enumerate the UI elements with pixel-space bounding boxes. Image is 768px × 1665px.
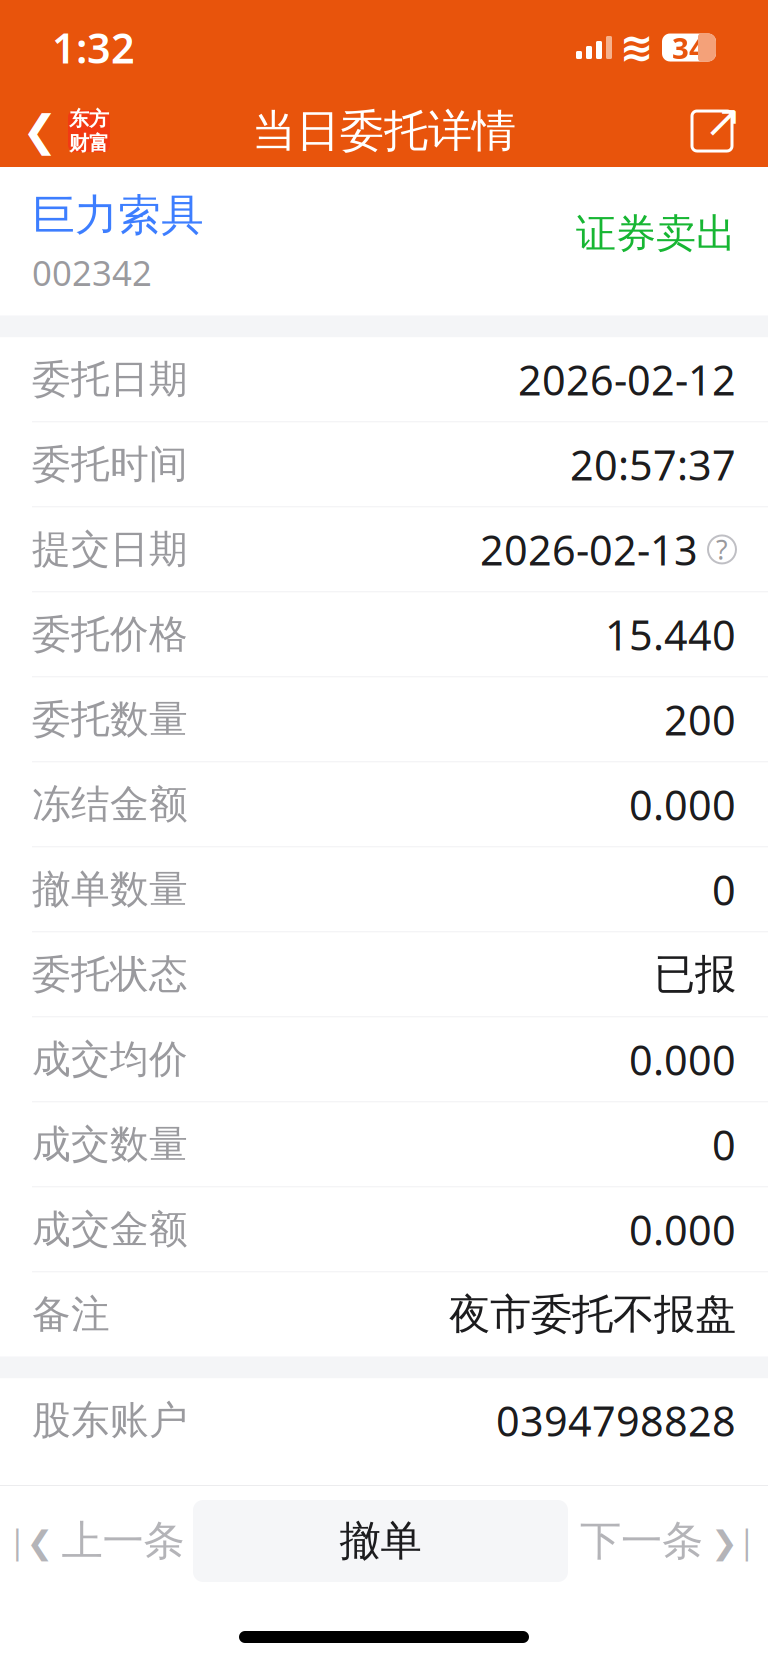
staticText: 上一条 [61,1516,184,1566]
staticText: 0 [712,1117,736,1172]
staticText: 0 [712,862,736,917]
staticText: 委托状态 [32,951,188,998]
staticText: 备注 [32,1291,110,1338]
staticText: 15.440 [605,607,736,662]
staticText: ❯| [711,1520,756,1562]
staticText: 1:32 [52,20,135,75]
staticText: 成交金额 [32,1206,188,1253]
staticText: 下一条 [580,1516,703,1566]
staticText: 夜市委托不报盘 [449,1289,736,1340]
staticText: 0.000 [629,1032,736,1087]
button[interactable]: 下一条 [568,1486,768,1596]
staticText: 34 [672,28,706,67]
button[interactable]: Back [0,97,110,165]
staticText: 002342 [32,249,152,295]
staticText: ↗ [704,95,742,147]
staticText: 成交均价 [32,1036,188,1083]
staticText: 20:57:37 [570,437,736,492]
staticText: 冻结金额 [32,781,188,828]
staticText: |❮ [8,1520,53,1562]
staticText: 委托时间 [32,441,188,488]
button[interactable]: 撤单 [193,1500,568,1582]
staticText: 当日委托详情 [252,104,516,158]
staticText: 撤单数量 [32,866,188,913]
staticText: 撤单 [339,1516,421,1566]
staticText: 200 [664,692,736,747]
staticText: 委托数量 [32,696,188,743]
staticText: 0.000 [629,777,736,832]
staticText: 0394798828 [496,1393,736,1448]
staticText: ? [716,532,728,567]
staticText: 2026-02-13 [480,522,698,577]
staticText: 委托价格 [32,611,188,658]
staticText: 东方 [69,106,109,131]
button[interactable]: Share [682,103,768,159]
staticText: 2026-02-12 [518,352,736,407]
staticText: 0.000 [629,1202,736,1257]
staticText: 财富 [69,131,109,156]
staticText: ≋ [620,25,654,70]
staticText: 股东账户 [32,1397,188,1444]
staticText: 提交日期 [32,526,188,573]
staticText: 委托日期 [32,356,188,403]
staticText: 成交数量 [32,1121,188,1168]
staticText: ❮ [22,107,58,155]
button[interactable]: |❮ [0,1486,193,1596]
staticText: 证券卖出 [576,209,736,258]
staticText: 巨力索具 [32,189,204,241]
staticText: 已报 [654,949,736,1000]
